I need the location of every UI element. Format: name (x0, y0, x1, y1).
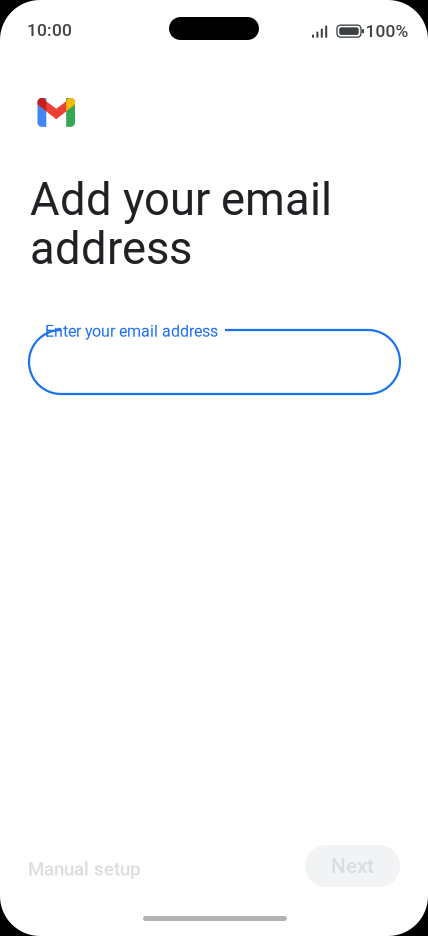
staticText: Add your email (30, 173, 332, 226)
staticText: Enter your email address (45, 322, 218, 341)
button[interactable]: Next (305, 845, 400, 887)
button[interactable]: Manual setup (28, 848, 156, 890)
staticText: address (30, 222, 192, 275)
button[interactable]: Enter your email address (29, 330, 400, 394)
staticText: 10:00 (27, 20, 72, 40)
staticText: Manual setup (28, 858, 140, 880)
staticText: 100% (365, 21, 408, 41)
staticText: Next (331, 854, 374, 878)
